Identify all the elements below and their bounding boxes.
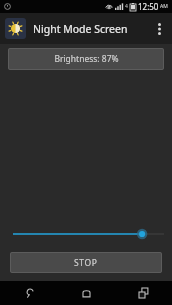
button[interactable]: More options [148, 13, 170, 44]
staticText: AM [160, 3, 168, 10]
staticText: Night Mode Screen Dim… [33, 22, 148, 36]
button[interactable]: Brightness slider [0, 221, 172, 247]
button[interactable]: Brightness: 87% [8, 48, 164, 70]
button[interactable]: Recents [115, 281, 172, 305]
staticText: 12:50 [138, 1, 159, 12]
staticText: STOP [74, 257, 98, 269]
staticText: Brightness: 87% [54, 53, 119, 65]
staticText: 4 [125, 3, 128, 10]
button[interactable]: Home [58, 281, 115, 305]
button[interactable]: Back [0, 281, 58, 305]
button[interactable]: App icon [5, 18, 26, 39]
button[interactable]: STOP [10, 252, 162, 273]
